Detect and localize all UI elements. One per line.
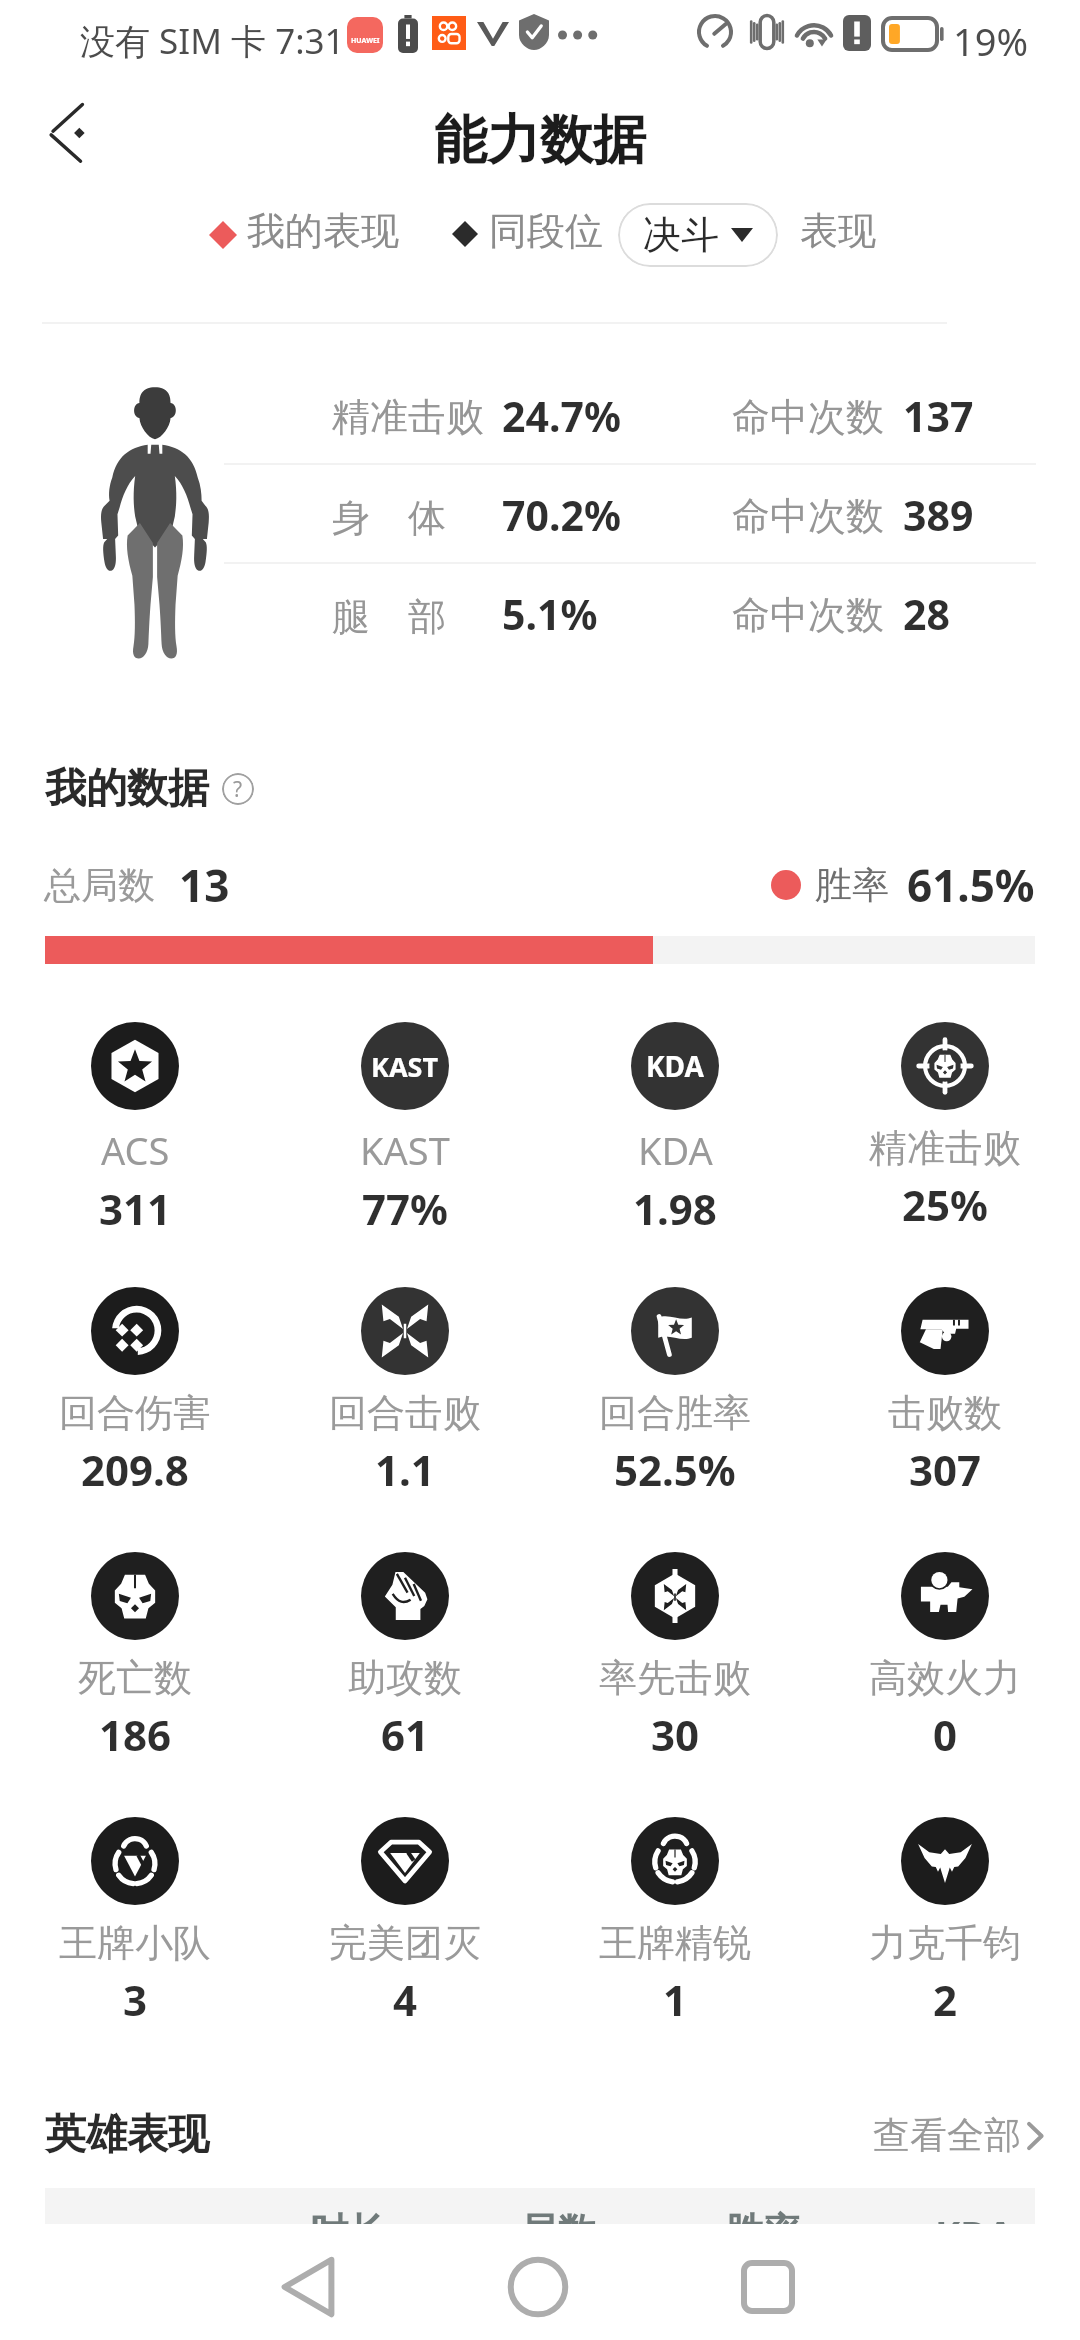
staticText: 命中次数 [732, 492, 884, 540]
button[interactable]: 助攻数 [270, 1552, 540, 1817]
button[interactable]: Help [222, 773, 254, 805]
staticText: 局数 [520, 2208, 596, 2256]
staticText: 决斗 [643, 211, 719, 259]
staticText: 61 [381, 1706, 430, 1763]
staticText: 身 体 [332, 490, 446, 542]
button[interactable]: 回合胜率 [540, 1287, 810, 1552]
staticText: 0 [933, 1706, 958, 1763]
button[interactable]: 王牌小队 [0, 1817, 270, 2082]
staticText: 61.5% [907, 855, 1035, 915]
staticText: KDA [646, 1047, 704, 1085]
button[interactable]: 死亡数 [0, 1552, 270, 1817]
staticText: 表现 [800, 207, 876, 255]
staticText: 我的数据 [45, 763, 209, 815]
staticText: 完美团灭 [329, 1919, 481, 1967]
staticText: 5.1% [502, 586, 598, 642]
staticText: 助攻数 [348, 1654, 462, 1702]
staticText: 死亡数 [78, 1654, 192, 1702]
staticText: 率先击败 [599, 1654, 751, 1702]
staticText: 回合胜率 [599, 1389, 751, 1437]
staticText: KAST [360, 1124, 450, 1176]
button[interactable]: 率先击败 [540, 1552, 810, 1817]
staticText: 腿 部 [332, 589, 446, 641]
staticText: 命中次数 [732, 393, 884, 441]
button[interactable]: 高效火力 [810, 1552, 1080, 1817]
staticText: ? [233, 775, 243, 804]
button[interactable]: 王牌精锐 [540, 1817, 810, 2082]
staticText: 没有 SIM 卡 7:31 [80, 17, 345, 65]
staticText: ACS [101, 1124, 170, 1176]
button[interactable]: 回合击败 [270, 1287, 540, 1552]
staticText: 我的表现 [247, 207, 399, 255]
staticText: 查看全部 [873, 2112, 1021, 2159]
staticText: 13 [179, 855, 230, 915]
staticText: 28 [903, 586, 950, 642]
staticText: 209.8 [81, 1441, 189, 1498]
staticText: 同段位 [489, 207, 603, 255]
staticText: KAST [371, 1048, 439, 1085]
staticText: 1 [663, 1971, 688, 2028]
button[interactable]: 查看全部 [873, 2112, 1044, 2159]
staticText: 能力数据 [434, 107, 646, 174]
staticText: 30 [651, 1706, 700, 1763]
staticText: 胜率 [815, 862, 889, 909]
staticText: 回合击败 [329, 1389, 481, 1437]
button[interactable]: 完美团灭 [270, 1817, 540, 2082]
staticText: 回合伤害 [59, 1389, 211, 1437]
staticText: 137 [903, 388, 974, 444]
staticText: 311 [99, 1180, 172, 1237]
button[interactable]: Home [493, 2242, 583, 2332]
button[interactable]: ACS [0, 1022, 270, 1287]
staticText: 精准击败 [332, 393, 484, 441]
button[interactable]: KAST [270, 1022, 540, 1287]
button[interactable]: 回合伤害 [0, 1287, 270, 1552]
button[interactable]: 精准击败 [810, 1022, 1080, 1287]
staticText: 70.2% [502, 487, 621, 543]
staticText: 王牌小队 [59, 1919, 211, 1967]
staticText: 胜率 [725, 2208, 801, 2256]
button[interactable]: 决斗 [618, 203, 778, 267]
staticText: 命中次数 [732, 591, 884, 639]
staticText: 1.1 [375, 1441, 435, 1498]
button[interactable]: Back [30, 88, 120, 178]
staticText: 24.7% [502, 388, 621, 444]
staticText: 王牌精锐 [599, 1919, 751, 1967]
button[interactable]: Back [263, 2242, 353, 2332]
staticText: 高效火力 [869, 1654, 1021, 1702]
staticText: 1.98 [633, 1180, 717, 1237]
button[interactable]: 力克千钧 [810, 1817, 1080, 2082]
staticText: KDA [638, 1124, 713, 1176]
staticText: 4 [393, 1971, 418, 2028]
button[interactable]: 击败数 [810, 1287, 1080, 1552]
staticText: 186 [99, 1706, 172, 1763]
staticText: 389 [903, 487, 974, 543]
staticText: 时长 [310, 2208, 386, 2256]
staticText: 力克千钧 [869, 1919, 1021, 1967]
staticText: 击败数 [888, 1389, 1002, 1437]
staticText: HUAWEI [351, 36, 380, 46]
staticText: 3 [123, 1971, 148, 2028]
staticText: 307 [909, 1441, 982, 1498]
staticText: 精准击败 [869, 1124, 1021, 1172]
button[interactable]: KDA [540, 1022, 810, 1287]
staticText: 总局数 [44, 862, 155, 909]
staticText: 25% [902, 1176, 988, 1233]
staticText: 2 [933, 1971, 958, 2028]
staticText: 19% [953, 15, 1029, 67]
button[interactable]: Recents [723, 2242, 813, 2332]
staticText: 英雄表现 [45, 2109, 209, 2161]
staticText: 77% [362, 1180, 448, 1237]
staticText: KDA [935, 2208, 1014, 2260]
staticText: 52.5% [614, 1441, 736, 1498]
